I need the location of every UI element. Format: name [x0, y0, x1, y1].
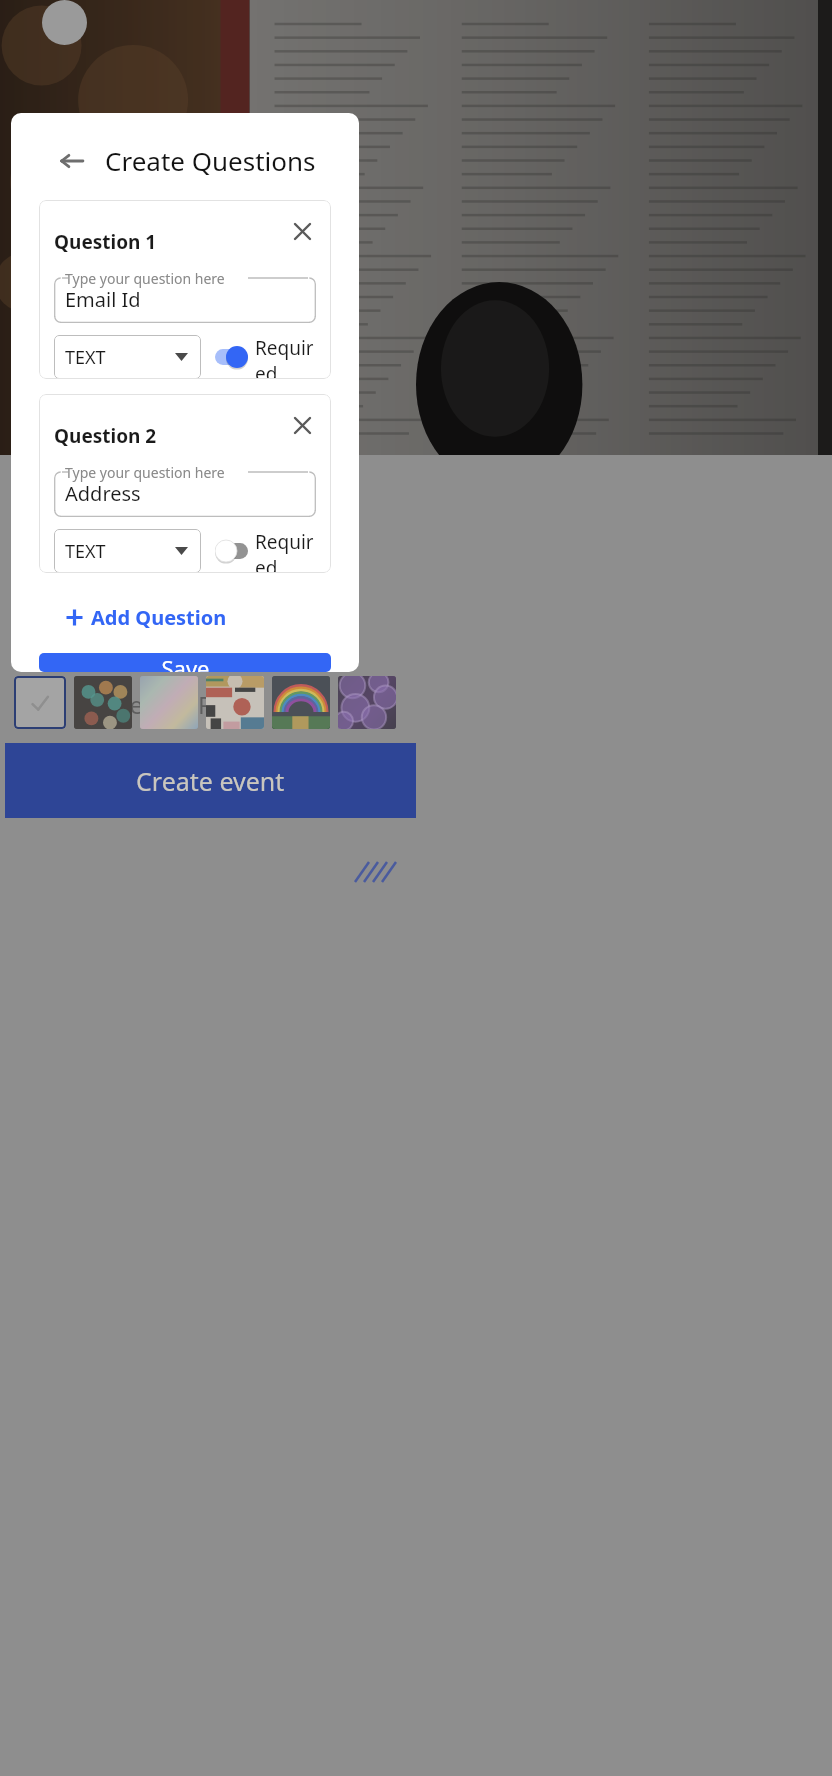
button[interactable]: Required [215, 335, 316, 379]
button[interactable]: No background selected [14, 676, 66, 729]
button[interactable]: TEXT [54, 335, 201, 379]
staticText: TEXT [65, 539, 106, 564]
staticText: Type your question here [65, 269, 225, 288]
staticText: TEXT [65, 345, 106, 370]
button[interactable]: Background option 5 [338, 676, 396, 729]
button[interactable]: Background option 2 [140, 676, 198, 729]
staticText: Question 2 [54, 423, 157, 449]
staticText: Required [255, 529, 316, 573]
staticText: Type your question here [65, 463, 225, 482]
staticText: Email Id [65, 286, 141, 313]
button[interactable]: Background option 4 [272, 676, 330, 729]
button[interactable]: Remove question 2 [287, 410, 317, 440]
button[interactable]: Add Question [61, 600, 231, 635]
staticText: Save [161, 653, 210, 672]
other: Profile [42, 0, 87, 45]
staticText: Create event [136, 764, 285, 798]
staticText: Extend RSVP availability after event end… [74, 739, 397, 762]
staticText: Required [255, 335, 316, 379]
staticText: Post event RSVP [74, 688, 255, 721]
staticText: Address [65, 480, 141, 507]
button[interactable]: Create event [5, 743, 416, 818]
button[interactable]: Background option 3 [206, 676, 264, 729]
button[interactable]: Save [39, 653, 331, 672]
button[interactable]: Required [215, 529, 316, 573]
staticText: Add Question [91, 604, 227, 631]
button[interactable]: Remove question 1 [287, 216, 317, 246]
button[interactable]: Back [55, 144, 89, 178]
staticText: Question 1 [54, 229, 157, 255]
button[interactable]: TEXT [54, 529, 201, 573]
button[interactable]: Background option 1 [74, 676, 132, 729]
staticText: Create Questions [105, 143, 316, 178]
